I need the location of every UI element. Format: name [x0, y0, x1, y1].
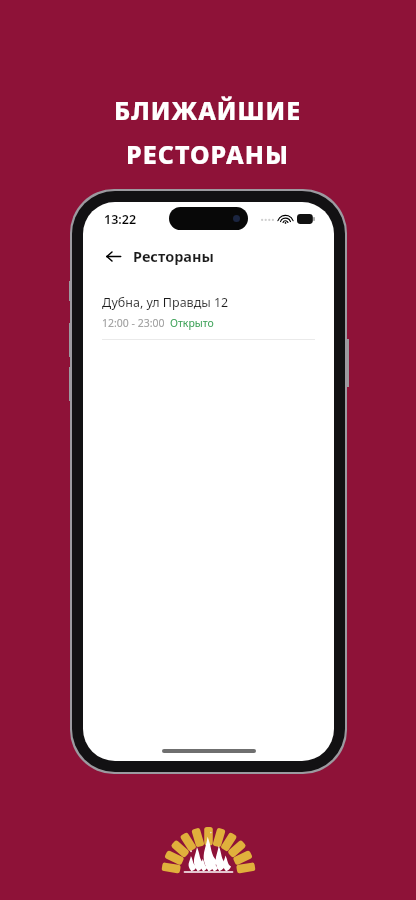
other: Wood fired oven logo — [160, 800, 257, 875]
button[interactable]: Back — [83, 236, 334, 276]
staticText: РЕСТОРАНЫ — [126, 137, 290, 171]
button[interactable]: Back — [102, 245, 124, 267]
staticText: Дубна, ул Правды 12 — [102, 294, 229, 311]
staticText: Открыто — [170, 316, 214, 330]
staticText: БЛИЖАЙШИЕ — [114, 93, 302, 127]
staticText: 12:00 - 23:00 — [102, 316, 165, 330]
staticText: 13:22 — [104, 211, 137, 228]
button[interactable]: Дубна, ул Правды 12 — [83, 294, 334, 340]
staticText: Рестораны — [133, 246, 214, 266]
